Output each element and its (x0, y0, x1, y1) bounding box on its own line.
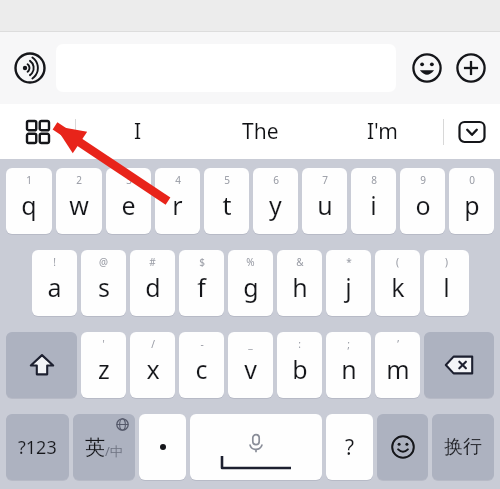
button[interactable]: Voice input (12, 50, 48, 86)
staticText: & (296, 255, 304, 269)
staticText: The (242, 117, 279, 146)
button[interactable]: & (277, 250, 322, 316)
staticText: ? (345, 433, 355, 462)
staticText: I'm (367, 117, 398, 146)
button[interactable]: 8 (351, 168, 396, 234)
button[interactable]: _ (228, 332, 273, 398)
staticText: f (197, 270, 206, 304)
button[interactable]: 英 (73, 414, 135, 480)
staticText: l (443, 270, 450, 304)
button[interactable]: ?123 (6, 414, 69, 480)
button[interactable]: Hide keyboard (444, 104, 500, 159)
staticText: g (243, 270, 259, 304)
staticText: 0 (469, 173, 475, 187)
button[interactable]: Period (139, 414, 186, 480)
staticText: t (222, 188, 232, 222)
staticText: ’ (397, 337, 399, 351)
staticText: ' (102, 337, 105, 351)
staticText: 8 (371, 173, 377, 187)
staticText: 4 (175, 173, 181, 187)
staticText: h (292, 270, 308, 304)
button[interactable]: ( (375, 250, 420, 316)
button[interactable]: * (326, 250, 371, 316)
button[interactable]: 2 (56, 168, 102, 234)
staticText: j (345, 270, 352, 304)
staticText: 2 (76, 173, 82, 187)
staticText: n (341, 352, 357, 386)
button[interactable]: : (277, 332, 322, 398)
button[interactable]: Shift (6, 332, 77, 398)
staticText: x (146, 352, 160, 386)
staticText: y (269, 188, 282, 222)
staticText: 英 (85, 435, 105, 460)
staticText: I (134, 117, 142, 146)
staticText: c (195, 352, 208, 386)
staticText: 7 (322, 173, 328, 187)
button[interactable]: 5 (204, 168, 249, 234)
staticText: k (391, 270, 405, 304)
staticText: b (292, 352, 308, 386)
button[interactable]: - (179, 332, 224, 398)
staticText: ! (53, 255, 56, 269)
staticText: 5 (224, 173, 230, 187)
staticText: e (121, 188, 136, 222)
button[interactable]: 6 (253, 168, 298, 234)
button[interactable]: 4 (155, 168, 200, 234)
staticText: @ (99, 255, 108, 269)
button[interactable]: The (199, 104, 321, 159)
button[interactable]: # (130, 250, 175, 316)
button[interactable]: ) (424, 250, 469, 316)
staticText: ; (347, 337, 350, 351)
staticText: % (246, 255, 255, 269)
button[interactable]: @ (81, 250, 126, 316)
staticText: o (415, 188, 431, 222)
staticText: # (149, 255, 156, 269)
button[interactable]: % (228, 250, 273, 316)
staticText: ( (396, 255, 399, 269)
button[interactable]: / (130, 332, 175, 398)
staticText: ?123 (18, 435, 57, 460)
button[interactable]: ! (32, 250, 77, 316)
button[interactable]: ? (326, 414, 373, 480)
button[interactable]: Emoji keyboard (377, 414, 428, 480)
button[interactable]: ; (326, 332, 371, 398)
staticText: 1 (26, 173, 32, 187)
staticText: * (346, 255, 352, 269)
button[interactable]: ' (81, 332, 126, 398)
staticText: 换行 (444, 435, 482, 459)
button[interactable]: Keyboard panels (0, 104, 75, 159)
button[interactable]: Add (454, 51, 488, 85)
staticText: a (47, 270, 62, 304)
staticText: v (244, 352, 257, 386)
button[interactable]: I (76, 104, 199, 159)
staticText: s (98, 270, 110, 304)
button[interactable]: 1 (6, 168, 52, 234)
button[interactable]: 0 (449, 168, 494, 234)
staticText: - (200, 337, 204, 351)
staticText: i (370, 188, 377, 222)
staticText: _ (248, 337, 253, 351)
staticText: / (151, 337, 155, 351)
button[interactable]: Emoji (410, 51, 444, 85)
staticText: z (98, 352, 110, 386)
staticText: d (145, 270, 161, 304)
staticText: 6 (273, 173, 279, 187)
staticText: 9 (420, 173, 426, 187)
button[interactable]: I'm (321, 104, 443, 159)
staticText: q (21, 188, 37, 222)
button[interactable]: 3 (106, 168, 151, 234)
button[interactable]: $ (179, 250, 224, 316)
staticText: p (464, 188, 480, 222)
staticText: u (317, 188, 333, 222)
button[interactable]: Space (190, 414, 322, 480)
staticText: $ (199, 255, 205, 269)
button[interactable]: ’ (375, 332, 420, 398)
button[interactable]: 7 (302, 168, 347, 234)
staticText: ) (445, 255, 448, 269)
button[interactable]: 9 (400, 168, 445, 234)
button[interactable]: Backspace (424, 332, 494, 398)
button[interactable]: 换行 (432, 414, 494, 480)
staticText: /中 (105, 442, 123, 460)
staticText: 3 (126, 173, 132, 187)
